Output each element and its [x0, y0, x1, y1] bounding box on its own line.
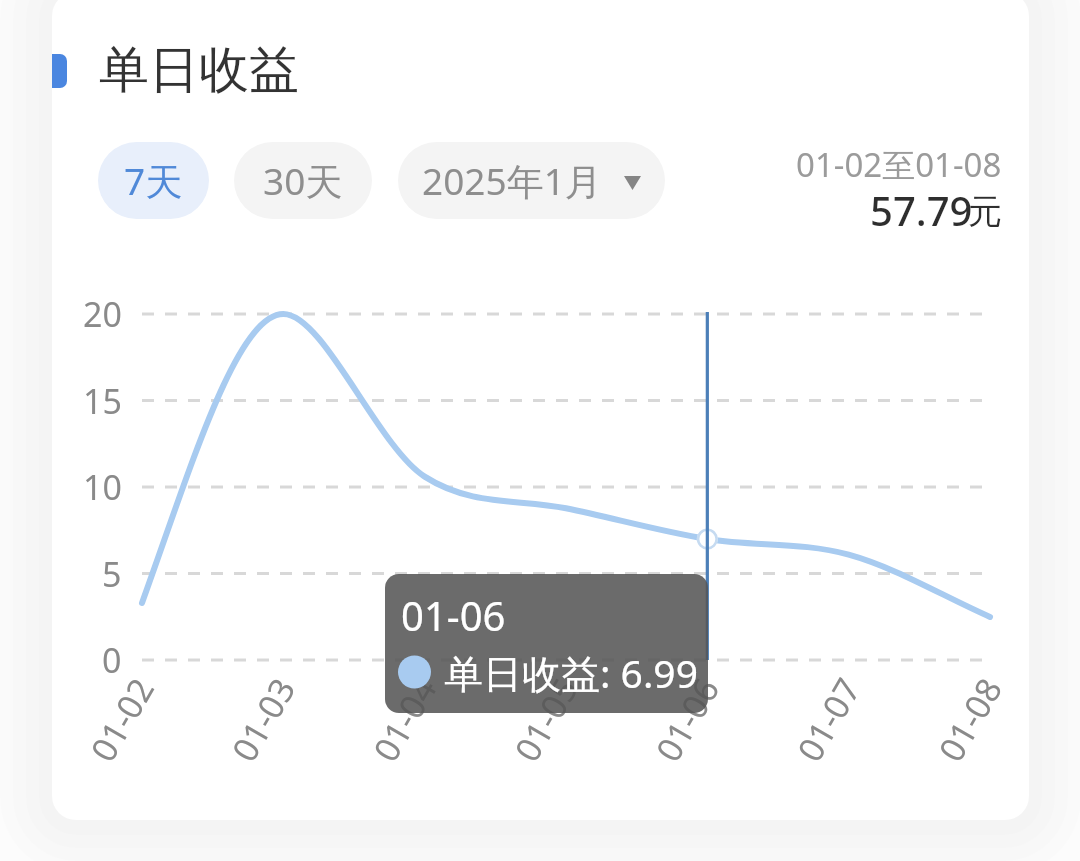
- staticText: 57.79: [870, 183, 973, 237]
- staticText: 01-02至01-08: [796, 142, 1002, 187]
- staticText: 元: [968, 190, 997, 233]
- button[interactable]: 30天: [234, 142, 372, 219]
- staticText: 30天: [263, 155, 343, 206]
- staticText: 7天: [124, 155, 183, 206]
- staticText: 2025年1月: [422, 155, 602, 206]
- staticText: 单日收益: [99, 39, 299, 102]
- button[interactable]: 7天: [98, 142, 209, 219]
- button[interactable]: 2025年1月: [398, 142, 665, 219]
